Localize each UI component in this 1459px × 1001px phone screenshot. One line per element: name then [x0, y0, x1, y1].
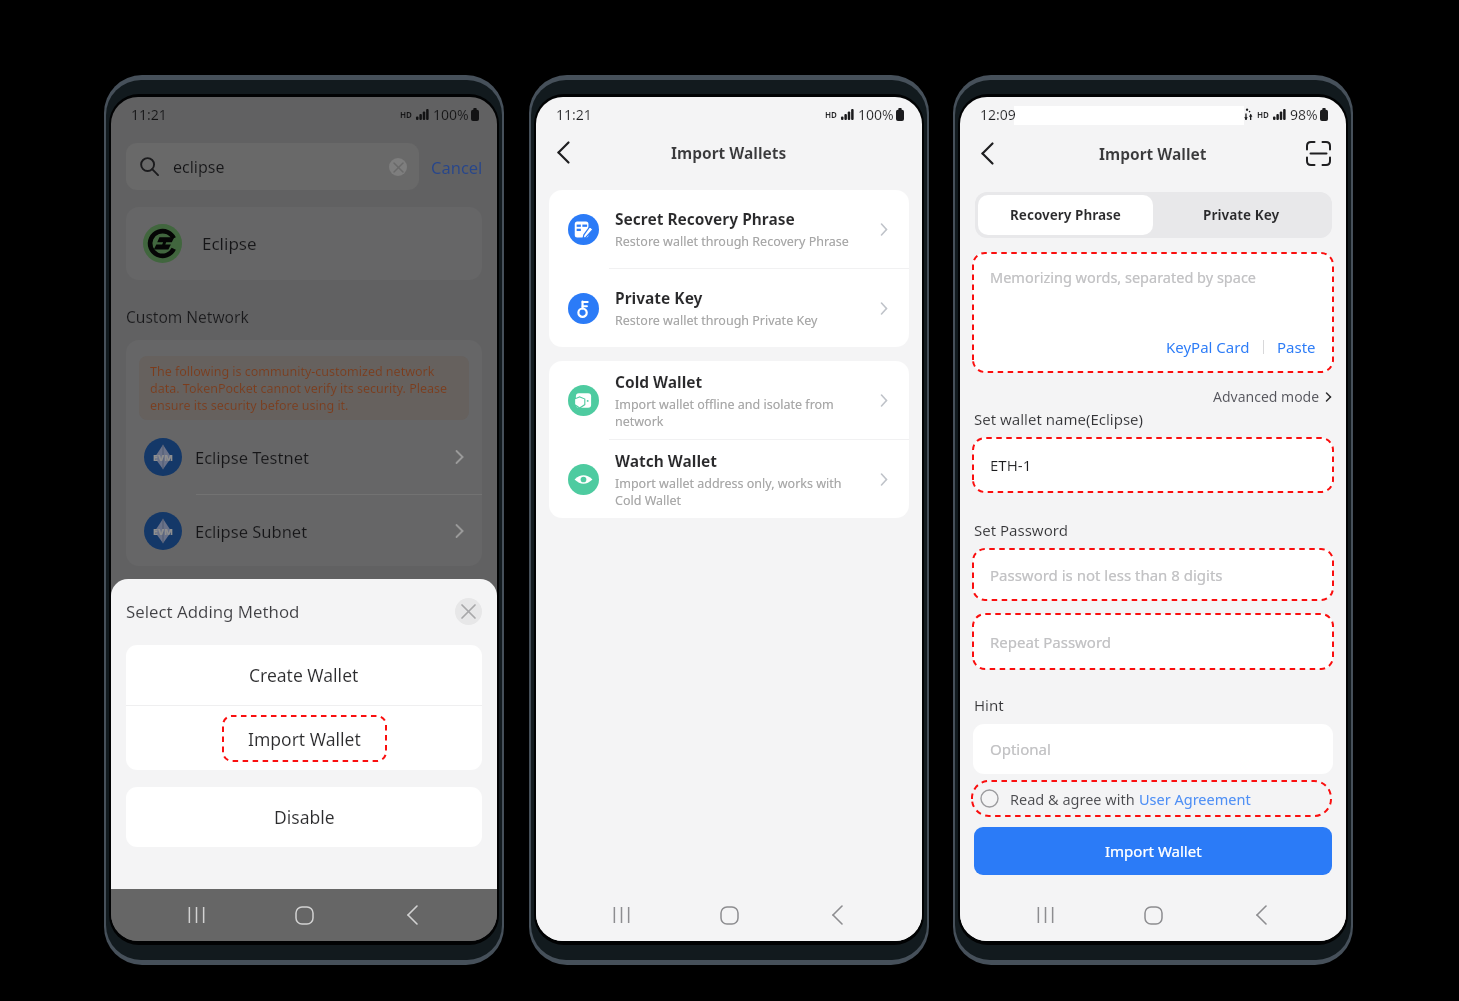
staticText: Create Wallet: [249, 663, 359, 687]
staticText: EVM: [153, 525, 173, 537]
button[interactable]: Home: [250, 889, 358, 941]
staticText: HD: [825, 109, 837, 120]
staticText: 11:21: [131, 105, 167, 124]
staticText: HD: [400, 109, 412, 120]
staticText: 12:09: [980, 105, 1016, 124]
staticText: Secret Recovery Phrase: [615, 208, 795, 229]
staticText: Eclipse: [202, 232, 257, 255]
button[interactable]: Back: [358, 889, 466, 941]
staticText: EVM: [153, 451, 173, 463]
staticText: Restore wallet through Recovery Phrase: [615, 233, 849, 250]
staticText: 11:21: [556, 105, 592, 124]
button[interactable]: Recent apps: [991, 889, 1099, 941]
staticText: Eclipse Testnet: [195, 446, 309, 468]
staticText: Memorizing words, separated by space: [990, 267, 1257, 287]
staticText: Import Wallet: [1099, 143, 1207, 164]
staticText: Password is not less than 8 digits: [990, 565, 1223, 585]
button[interactable]: Back: [1207, 889, 1315, 941]
button[interactable]: Close: [455, 598, 482, 625]
staticText: 100%: [858, 105, 894, 124]
staticText: Private Key: [1203, 206, 1280, 224]
staticText: Hint: [974, 695, 1004, 715]
staticText: Watch Wallet: [615, 450, 717, 471]
button[interactable]: Create Wallet: [126, 645, 482, 705]
button[interactable]: Back: [970, 136, 1004, 170]
button[interactable]: Paste: [1277, 334, 1316, 360]
staticText: Read & agree with: [1010, 789, 1139, 809]
staticText: The following is community-customized ne…: [150, 363, 458, 413]
staticText: 98%: [1290, 105, 1318, 124]
button[interactable]: Disable: [126, 787, 482, 847]
staticText: Import wallet offline and isolate from n…: [615, 396, 834, 430]
button[interactable]: Cancel: [431, 150, 483, 184]
staticText: Import Wallet: [248, 727, 361, 751]
button[interactable]: Home: [675, 889, 783, 941]
button[interactable]: Read & agree with: [972, 781, 1331, 816]
button[interactable]: Back: [546, 135, 580, 169]
staticText: Optional: [990, 739, 1051, 759]
staticText: Cold Wallet: [615, 371, 703, 392]
button[interactable]: KeyPal Card: [1166, 334, 1250, 360]
staticText: Restore wallet through Private Key: [615, 312, 818, 329]
staticText: Repeat Password: [990, 632, 1112, 652]
button[interactable]: Advanced mode: [1213, 385, 1332, 408]
staticText: Cancel: [431, 156, 483, 178]
button[interactable]: Back: [783, 889, 891, 941]
staticText: KeyPal Card: [1166, 337, 1250, 357]
button[interactable]: Recovery Phrase: [978, 195, 1153, 235]
staticText: User Agreement: [1139, 789, 1251, 809]
staticText: Private Key: [615, 287, 703, 308]
button[interactable]: Private Key: [568, 269, 888, 347]
staticText: Custom Network: [126, 306, 249, 327]
staticText: Import Wallets: [671, 142, 787, 163]
staticText: Select Adding Method: [126, 600, 300, 623]
button[interactable]: Scan QR code: [1302, 137, 1334, 169]
button[interactable]: Secret Recovery Phrase: [568, 190, 888, 268]
staticText: Eclipse Subnet: [195, 520, 308, 542]
staticText: ETH-1: [990, 455, 1032, 475]
button[interactable]: EVM: [126, 420, 482, 494]
staticText: Set Password: [974, 520, 1068, 540]
button[interactable]: Eclipse: [126, 207, 482, 280]
staticText: Advanced mode: [1213, 387, 1320, 406]
staticText: Paste: [1277, 337, 1316, 357]
staticText: 100%: [433, 105, 469, 124]
button[interactable]: Home: [1099, 889, 1207, 941]
button[interactable]: Import Wallet: [974, 827, 1332, 875]
button[interactable]: Recent apps: [142, 889, 250, 941]
button[interactable]: Cold Wallet: [568, 361, 888, 439]
staticText: Disable: [274, 805, 335, 829]
staticText: Recovery Phrase: [1010, 206, 1121, 224]
button[interactable]: Watch Wallet: [568, 440, 888, 518]
button[interactable]: Recent apps: [567, 889, 675, 941]
staticText: HD: [1257, 109, 1269, 120]
staticText: Import Wallet: [1105, 841, 1202, 861]
button[interactable]: eclipse: [126, 143, 419, 190]
staticText: Set wallet name(Eclipse): [974, 409, 1144, 429]
button[interactable]: Import Wallet: [223, 716, 386, 761]
button[interactable]: Clear search: [389, 158, 407, 176]
button[interactable]: Private Key: [1153, 195, 1329, 235]
staticText: eclipse: [173, 156, 225, 178]
button[interactable]: EVM: [126, 495, 482, 566]
staticText: Import wallet address only, works with C…: [615, 475, 842, 509]
